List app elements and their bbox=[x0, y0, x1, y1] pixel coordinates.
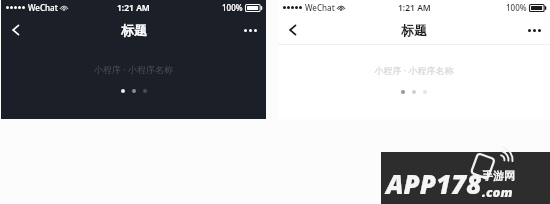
staticText: 标题 bbox=[401, 22, 427, 38]
button[interactable]: Back bbox=[282, 19, 304, 41]
staticText: 小程序 · 小程序名称 bbox=[1, 63, 266, 75]
staticText: 100% bbox=[222, 2, 243, 13]
button[interactable]: Back bbox=[5, 19, 27, 41]
button[interactable]: More options bbox=[239, 19, 261, 41]
staticText: APP178 bbox=[386, 166, 482, 201]
staticText: 1:21 AM bbox=[117, 2, 150, 14]
button[interactable]: More options bbox=[523, 19, 545, 41]
staticText: 标题 bbox=[121, 22, 147, 38]
staticText: WeChat bbox=[305, 2, 335, 13]
staticText: 小程序 · 小程序名称 bbox=[278, 64, 550, 76]
staticText: 1:21 AM bbox=[398, 2, 431, 14]
staticText: WeChat bbox=[28, 2, 58, 13]
staticText: 手游网 bbox=[482, 169, 515, 183]
staticText: 100% bbox=[506, 2, 527, 13]
staticText: .com bbox=[482, 183, 513, 201]
